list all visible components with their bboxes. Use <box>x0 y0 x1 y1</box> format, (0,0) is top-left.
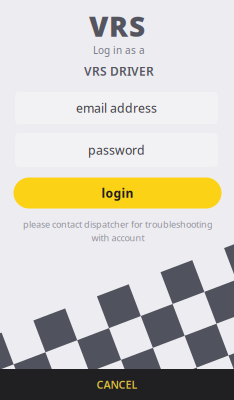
staticText: VRS <box>89 7 145 45</box>
staticText: Log in as a <box>93 43 145 57</box>
staticText: please contact dispatcher for troublesho… <box>23 218 213 230</box>
staticText: email address <box>76 100 157 116</box>
staticText: login <box>101 185 133 201</box>
button[interactable]: email address <box>15 92 218 124</box>
staticText: password <box>88 142 145 158</box>
staticText: with account <box>91 231 144 244</box>
button[interactable]: login <box>13 177 221 208</box>
staticText: CANCEL <box>96 377 137 392</box>
staticText: VRS DRIVER <box>84 63 154 79</box>
button[interactable]: password <box>15 133 218 167</box>
button[interactable]: CANCEL <box>0 369 234 400</box>
